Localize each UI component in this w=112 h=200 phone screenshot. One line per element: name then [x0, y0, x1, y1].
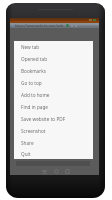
button[interactable]: Save website to PDF — [14, 113, 93, 125]
button[interactable]: Screenshot — [14, 125, 93, 137]
button[interactable]: Share — [14, 137, 93, 149]
button[interactable]: New tab — [14, 41, 93, 53]
staticText: Bookmarks — [21, 68, 46, 74]
staticText: Find in page — [21, 104, 49, 110]
staticText: Share — [21, 140, 34, 146]
staticText: https://www.website.com/web — [15, 23, 64, 28]
staticText: Quit — [21, 151, 31, 157]
staticText: Screenshot — [21, 128, 46, 134]
staticText: Opened tab — [21, 56, 48, 62]
button[interactable]: Quit — [14, 149, 93, 159]
staticText: Go to top — [21, 80, 42, 86]
button[interactable]: Find in page — [14, 101, 93, 113]
staticText: Save website to PDF — [21, 116, 66, 122]
button[interactable]: Opened tab — [14, 53, 93, 65]
button[interactable]: Home — [53, 168, 59, 174]
button[interactable]: Recents — [65, 168, 70, 174]
button[interactable]: Bookmarks — [14, 65, 93, 77]
button[interactable]: Go to top — [14, 77, 93, 89]
button[interactable]: Menu — [41, 168, 47, 174]
staticText: Add to home — [21, 92, 50, 98]
staticText: New tab — [21, 44, 40, 50]
button[interactable]: Add to home — [14, 89, 93, 101]
